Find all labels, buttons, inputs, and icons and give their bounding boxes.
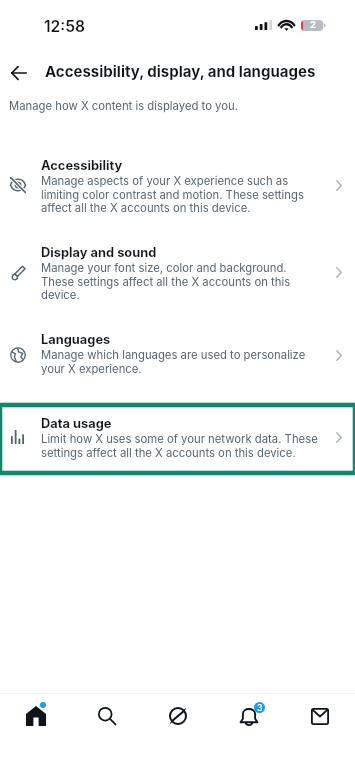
button[interactable]: Display and sound	[0, 230, 355, 315]
button[interactable]: Grok	[142, 694, 213, 738]
staticText: 3	[257, 702, 263, 713]
staticText: Accessibility, display, and languages	[45, 62, 316, 80]
staticText: 12:58	[44, 17, 86, 36]
button[interactable]: Search	[71, 694, 142, 738]
button[interactable]: Back	[0, 54, 37, 91]
button[interactable]: Home	[0, 694, 71, 738]
staticText: Accessibility	[41, 158, 123, 174]
staticText: Manage aspects of your X experience such…	[41, 174, 318, 214]
staticText: Data usage	[41, 416, 112, 432]
staticText: Manage your font size, color and backgro…	[41, 261, 318, 301]
button[interactable]: Messages	[284, 694, 355, 738]
staticText: Manage how X content is displayed to you…	[9, 99, 238, 113]
button[interactable]: Accessibility	[0, 144, 355, 228]
staticText: Languages	[41, 332, 111, 348]
staticText: Display and sound	[41, 245, 157, 261]
staticText: Limit how X uses some of your network da…	[41, 432, 318, 459]
button[interactable]: Languages	[0, 317, 355, 389]
button[interactable]: Data usage	[0, 405, 355, 473]
staticText: Manage which languages are used to perso…	[41, 348, 318, 375]
staticText: 2	[310, 19, 316, 31]
button[interactable]: Notifications	[213, 694, 284, 738]
